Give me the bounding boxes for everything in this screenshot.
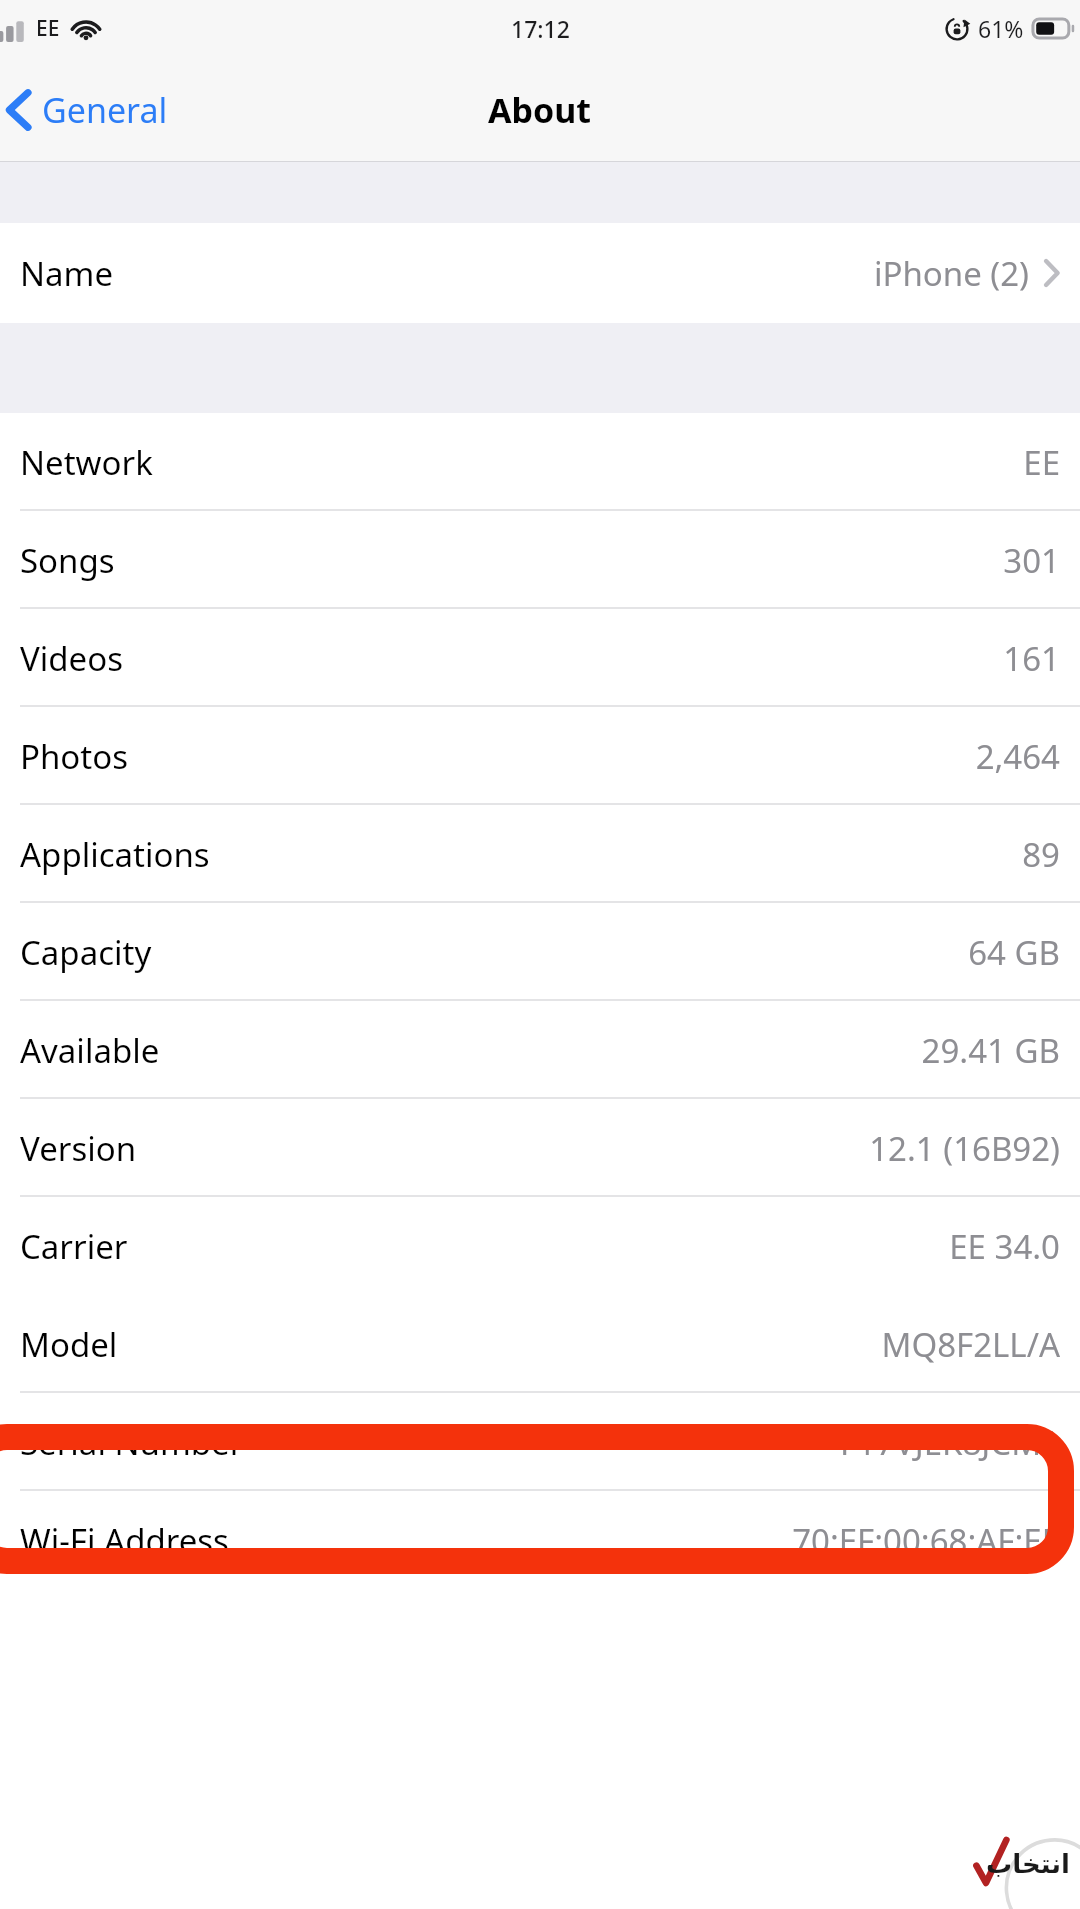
button[interactable]: Carrier	[0, 1197, 1080, 1295]
staticText: 64 GB	[968, 930, 1060, 975]
staticText: About	[488, 87, 592, 133]
button[interactable]: Serial Number	[0, 1393, 1080, 1491]
button[interactable]: Photos	[0, 707, 1080, 805]
button[interactable]: Videos	[0, 609, 1080, 707]
staticText: Carrier	[20, 1224, 128, 1269]
staticText: 61%	[978, 13, 1024, 44]
staticText: iPhone (2)	[873, 251, 1029, 296]
staticText: MQ8F2LL/A	[881, 1322, 1060, 1367]
staticText: Network	[20, 440, 153, 485]
staticText: 161	[1003, 636, 1060, 681]
staticText: 301	[1003, 538, 1060, 583]
staticText: Available	[20, 1028, 160, 1073]
staticText: انتخاب	[986, 1849, 1070, 1879]
staticText: Model	[20, 1322, 118, 1367]
staticText: Videos	[20, 636, 123, 681]
staticText: EE	[36, 14, 60, 43]
staticText: EE	[1023, 440, 1060, 485]
button[interactable]: Applications	[0, 805, 1080, 903]
staticText: Photos	[20, 734, 129, 779]
button[interactable]: Available	[0, 1001, 1080, 1099]
button[interactable]: Capacity	[0, 903, 1080, 1001]
staticText: Applications	[20, 832, 210, 877]
staticText: Capacity	[20, 930, 152, 975]
staticText: Wi-Fi Address	[20, 1518, 229, 1563]
staticText: Songs	[20, 538, 115, 583]
button[interactable]: Network	[0, 413, 1080, 511]
staticText: 70:EF:00:68:AF:EE	[792, 1518, 1060, 1563]
button[interactable]: Version	[0, 1099, 1080, 1197]
staticText: 2,464	[975, 734, 1060, 779]
button[interactable]: Songs	[0, 511, 1080, 609]
staticText: 17:12	[511, 13, 570, 44]
button[interactable]: Name	[0, 223, 1080, 323]
staticText: 89	[1022, 832, 1060, 877]
button[interactable]: Wi-Fi Address	[0, 1491, 1080, 1589]
staticText: Version	[20, 1126, 137, 1171]
button[interactable]: General	[0, 78, 184, 142]
staticText: EE 34.0	[949, 1224, 1060, 1269]
staticText: F17VJEK8JCM1	[839, 1420, 1060, 1465]
staticText: Name	[20, 251, 114, 296]
staticText: 12.1 (16B92)	[869, 1126, 1060, 1171]
staticText: General	[42, 87, 168, 133]
button[interactable]: Model	[0, 1295, 1080, 1393]
staticText: 29.41 GB	[921, 1028, 1060, 1073]
staticText: Serial Number	[20, 1420, 244, 1465]
